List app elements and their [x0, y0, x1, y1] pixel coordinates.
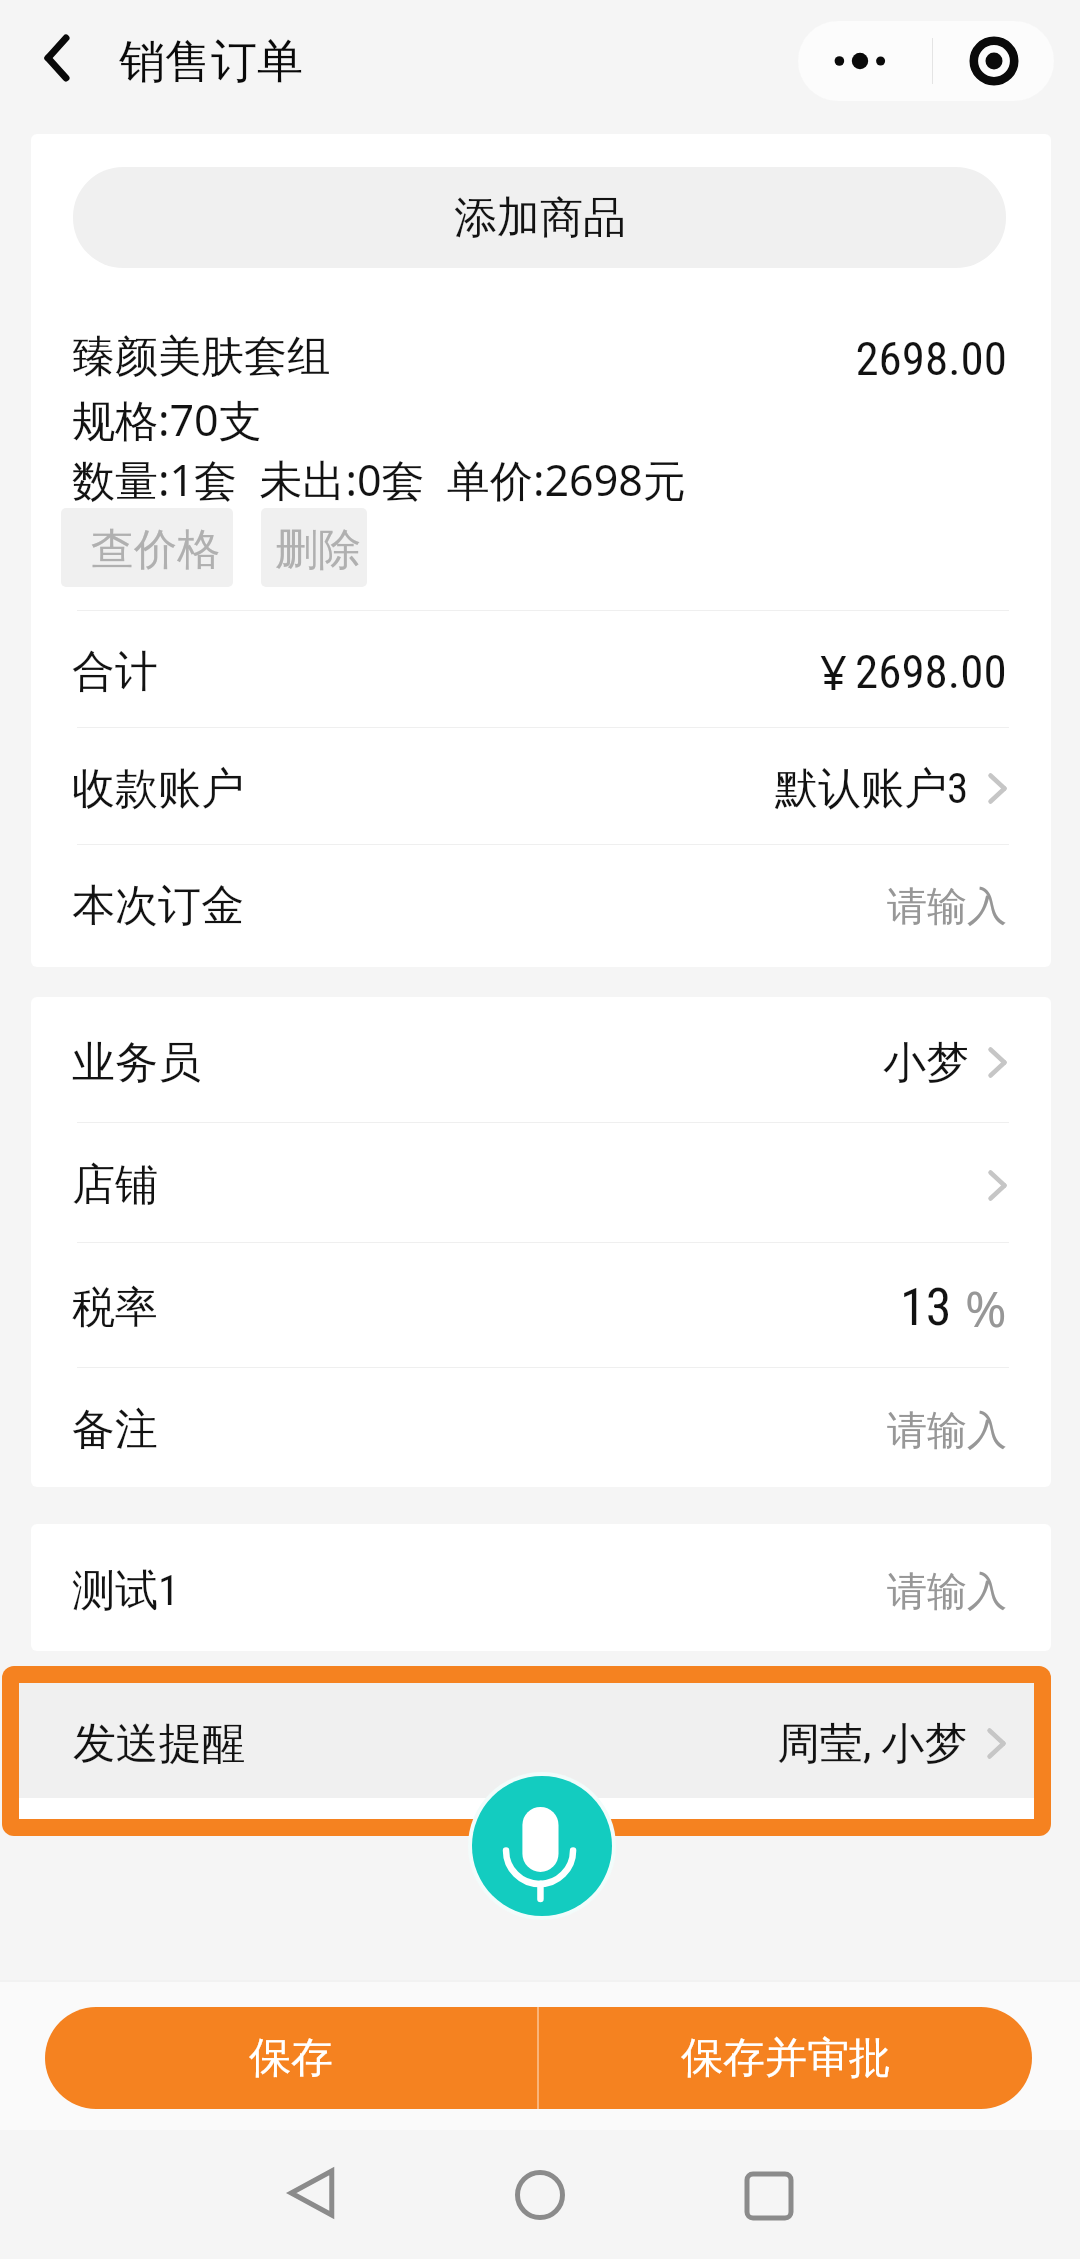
- staticText: 周莹, 小梦: [777, 1717, 968, 1771]
- button[interactable]: 本次订金: [31, 844, 1051, 961]
- staticText: 测试1: [72, 1564, 180, 1618]
- staticText: 请输入: [887, 1566, 1007, 1616]
- staticText: 收款账户: [72, 762, 244, 816]
- button[interactable]: 发送提醒: [19, 1683, 1034, 1798]
- staticText: 臻颜美肤套组: [72, 330, 330, 384]
- button[interactable]: Back: [17, 18, 97, 98]
- button[interactable]: Voice input: [468, 1772, 616, 1920]
- staticText: 删除: [275, 523, 361, 577]
- staticText: 业务员: [72, 1036, 201, 1090]
- staticText: 本次订金: [72, 879, 244, 933]
- button[interactable]: 查价格: [61, 508, 233, 587]
- staticText: 销售订单: [119, 33, 303, 91]
- staticText: 发送提醒: [73, 1717, 245, 1771]
- button[interactable]: 店铺: [31, 1122, 1051, 1242]
- button[interactable]: Recent apps: [709, 2136, 829, 2256]
- button[interactable]: Back: [252, 2133, 372, 2253]
- button[interactable]: 合计: [31, 610, 1051, 727]
- staticText: 保存并审批: [681, 2032, 891, 2085]
- staticText: 查价格: [91, 523, 220, 577]
- button[interactable]: 保存并审批: [539, 2007, 1032, 2109]
- staticText: 2698.00: [600, 331, 1007, 386]
- staticText: 店铺: [72, 1158, 158, 1212]
- staticText: 保存: [249, 2032, 333, 2085]
- button[interactable]: More options: [798, 21, 932, 101]
- button[interactable]: 税率: [31, 1242, 1051, 1367]
- button[interactable]: 业务员: [31, 997, 1051, 1122]
- button[interactable]: 添加商品: [73, 167, 1006, 268]
- staticText: 添加商品: [454, 191, 626, 245]
- button[interactable]: 测试1: [31, 1524, 1051, 1651]
- button[interactable]: 备注: [31, 1367, 1051, 1487]
- staticText: 备注: [72, 1403, 158, 1457]
- staticText: 规格:70支: [72, 390, 262, 449]
- staticText: 请输入: [887, 1405, 1007, 1455]
- button[interactable]: Close mini program: [933, 21, 1054, 101]
- staticText: 小梦: [883, 1036, 969, 1090]
- staticText: ¥: [820, 640, 847, 704]
- staticText: 数量:1套 未出:0套 单价:2698元: [72, 450, 686, 509]
- staticText: %: [965, 1274, 1007, 1342]
- staticText: 默认账户3: [775, 762, 969, 816]
- staticText: 2698.00: [855, 644, 1007, 699]
- button[interactable]: 收款账户: [31, 727, 1051, 844]
- button[interactable]: Home: [480, 2135, 600, 2255]
- staticText: 请输入: [887, 881, 1007, 931]
- staticText: 13: [900, 1277, 952, 1338]
- staticText: 合计: [72, 645, 158, 699]
- staticText: 税率: [72, 1281, 158, 1335]
- button[interactable]: 删除: [261, 508, 367, 587]
- button[interactable]: 保存: [45, 2007, 537, 2109]
